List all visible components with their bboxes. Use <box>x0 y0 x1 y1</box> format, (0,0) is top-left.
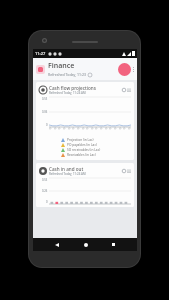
staticText: Receivables (in Lac) <box>67 153 96 157</box>
button[interactable]: Projection (in Lac) <box>61 138 94 142</box>
button[interactable]: Chart options <box>122 88 131 92</box>
staticText: 12 Jun <box>53 126 58 131</box>
staticText: 0.06 <box>42 110 48 114</box>
staticText: 12 Jun <box>118 126 123 131</box>
staticText: Cash flow projections <box>49 85 96 91</box>
button[interactable]: More options <box>133 67 134 72</box>
staticText: Refreshed Today, 11:24 AM <box>49 172 86 176</box>
button[interactable]: SO receivables (in Lac) <box>61 148 101 152</box>
button[interactable]: Cash flow projections <box>36 82 134 160</box>
staticText: 12 Jun <box>85 126 90 131</box>
staticText: 12 Jun <box>48 126 53 131</box>
staticText: Refreshed Today, 11:23 <box>48 72 86 77</box>
staticText: 12 Jun <box>94 126 99 131</box>
button[interactable]: Chart options <box>122 169 131 173</box>
button[interactable]: Back <box>51 239 62 250</box>
staticText: Refreshed Today, 11:24 AM <box>49 91 86 95</box>
button[interactable]: Receivables (in Lac) <box>61 153 96 157</box>
button[interactable]: Cash in and out <box>36 163 134 207</box>
staticText: Cash in and out <box>49 166 84 172</box>
staticText: 0 <box>46 200 48 204</box>
staticText: 0.26 <box>42 189 48 193</box>
staticText: 12 Jun <box>81 126 86 131</box>
staticText: 12 Jun <box>122 126 127 131</box>
staticText: 0.53 <box>42 178 48 182</box>
staticText: 12 Jun <box>62 126 67 131</box>
button[interactable]: PO payables (in Lac) <box>61 143 97 147</box>
staticText: Projection (in Lac) <box>67 138 94 142</box>
staticText: PO payables (in Lac) <box>67 143 97 147</box>
button[interactable]: Refresh <box>118 63 131 76</box>
staticText: 12 Jun <box>127 126 132 131</box>
staticText: 12 Jun <box>104 126 109 131</box>
staticText: 12 Jun <box>76 126 81 131</box>
staticText: Finance <box>48 61 75 71</box>
button[interactable]: App icon <box>36 65 45 74</box>
button[interactable]: Recent apps <box>108 239 119 250</box>
staticText: 12 Jun <box>90 126 95 131</box>
staticText: 12 Jun <box>108 126 113 131</box>
staticText: 11:27 <box>35 51 46 56</box>
staticText: 0 <box>46 123 48 127</box>
staticText: 12 Jun <box>57 126 62 131</box>
staticText: 12 Jun <box>71 126 76 131</box>
staticText: 12 Jun <box>67 126 72 131</box>
staticText: 0.55 <box>42 97 48 101</box>
staticText: 12 Jun <box>99 126 104 131</box>
staticText: 12 Jun <box>113 126 118 131</box>
button[interactable]: Home <box>80 239 91 250</box>
staticText: SO receivables (in Lac) <box>67 148 101 152</box>
